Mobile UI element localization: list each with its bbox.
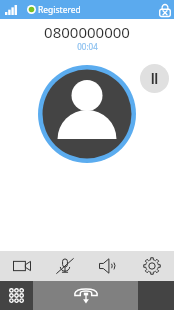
- button[interactable]: Hold call: [140, 64, 169, 93]
- staticText: 00:04: [77, 41, 98, 52]
- other: Not encrypted: [158, 3, 172, 17]
- staticText: 0800000000: [44, 22, 130, 42]
- button[interactable]: End call: [33, 281, 138, 310]
- button[interactable]: Settings: [130, 251, 174, 281]
- button[interactable]: Mute microphone: [43, 251, 86, 281]
- button[interactable]: Video: [0, 251, 43, 281]
- button[interactable]: Speaker: [86, 251, 130, 281]
- button[interactable]: Dialpad: [0, 281, 33, 310]
- staticText: Registered: [38, 4, 81, 16]
